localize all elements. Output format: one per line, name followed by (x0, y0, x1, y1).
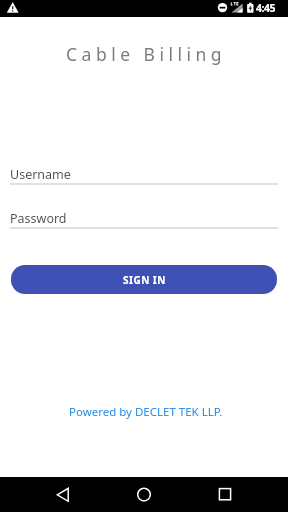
staticText: Username (10, 166, 71, 183)
button[interactable] (128, 478, 160, 511)
button[interactable] (209, 478, 241, 511)
button[interactable]: Password (10, 208, 278, 229)
staticText: Cable Billing (66, 42, 227, 66)
staticText: SIGN IN (123, 273, 166, 287)
button[interactable]: SIGN IN (11, 265, 277, 294)
button[interactable]: Powered by DECLET TEK LLP. (69, 404, 223, 420)
staticText: 4:45 (256, 1, 275, 15)
button[interactable]: Username (10, 164, 278, 185)
button[interactable] (47, 478, 79, 511)
staticText: Password (10, 210, 67, 227)
